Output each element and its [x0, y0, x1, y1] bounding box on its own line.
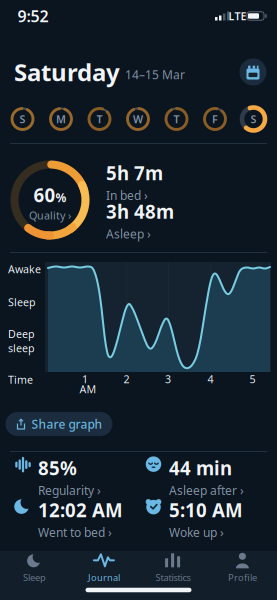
staticText: S [19, 112, 25, 126]
button[interactable]: 85% [14, 456, 134, 498]
button[interactable]: T [162, 105, 190, 133]
staticText: 14–15 Mar [125, 66, 185, 82]
staticText: Time [8, 372, 33, 387]
button[interactable]: T [85, 105, 113, 133]
staticText: M [56, 112, 66, 126]
staticText: 9:52 [17, 5, 48, 27]
staticText: 5:10 AM [169, 498, 243, 522]
button[interactable]: 12:02 AM [14, 498, 134, 540]
staticText: 12:02 AM [38, 498, 123, 522]
staticText: Profile [228, 571, 257, 584]
staticText: T [173, 112, 179, 126]
staticText: Asleep after › [169, 482, 244, 498]
staticText: 3h 48m [106, 199, 174, 224]
staticText: Journal [88, 571, 120, 584]
staticText: W [133, 112, 143, 126]
staticText: Woke up › [169, 524, 224, 540]
staticText: AM [79, 382, 96, 396]
staticText: Went to bed › [38, 524, 112, 540]
button[interactable]: Profile [210, 547, 274, 589]
button[interactable]: Statistics [141, 547, 205, 589]
staticText: Quality › [29, 208, 71, 222]
button[interactable]: W [124, 105, 152, 133]
button[interactable]: Share graph [5, 412, 112, 436]
button[interactable]: S [8, 105, 36, 133]
staticText: Statistics [156, 571, 191, 584]
staticText: 85% [38, 456, 77, 480]
button[interactable]: F [201, 105, 229, 133]
staticText: Saturday [14, 56, 120, 88]
button[interactable]: 3h 48m [106, 199, 206, 242]
button[interactable] [239, 58, 266, 85]
staticText: T [96, 112, 102, 126]
staticText: Sleep [23, 571, 46, 584]
button[interactable]: 60 [29, 182, 71, 222]
staticText: Share graph [31, 416, 102, 432]
staticText: LTE [228, 9, 246, 23]
button[interactable]: M [47, 105, 75, 133]
staticText: 44 min [169, 456, 232, 480]
staticText: F [212, 112, 218, 126]
button[interactable]: Journal [72, 547, 136, 589]
staticText: Sleep [8, 295, 36, 309]
staticText: Deep [8, 327, 35, 341]
button[interactable]: Sleep [3, 547, 67, 589]
staticText: Asleep › [106, 226, 151, 242]
staticText: Awake [8, 262, 41, 276]
staticText: 60 [33, 182, 55, 207]
staticText: 3 [165, 372, 171, 386]
staticText: 1 [82, 372, 88, 386]
staticText: 4 [207, 372, 213, 386]
button[interactable]: 5:10 AM [145, 498, 265, 540]
staticText: 5h 7m [106, 161, 163, 185]
staticText: sleep [8, 341, 35, 355]
button[interactable]: 5h 7m [106, 161, 206, 203]
staticText: In bed › [106, 187, 148, 203]
button[interactable]: S [238, 104, 268, 134]
staticText: Regularity › [38, 482, 101, 498]
button[interactable]: 44 min [145, 456, 265, 498]
staticText: 2 [123, 372, 129, 386]
staticText: % [55, 189, 66, 205]
staticText: 5 [249, 372, 255, 386]
staticText: S [250, 112, 256, 126]
